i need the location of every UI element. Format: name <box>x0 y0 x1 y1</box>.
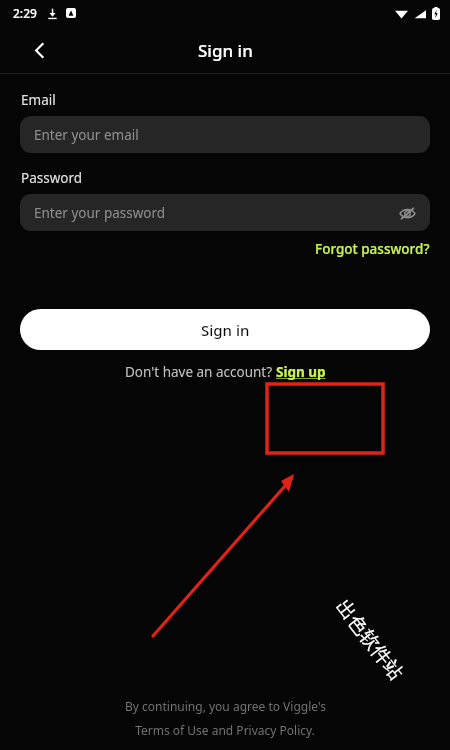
staticText: Enter your email <box>34 126 139 144</box>
staticText: Password <box>21 169 83 187</box>
staticText: Sign in <box>198 39 253 62</box>
staticText: Email <box>21 91 56 109</box>
button[interactable]: Enter your password <box>20 194 430 231</box>
button[interactable]: Forgot password? <box>295 237 450 261</box>
staticText: Enter your password <box>34 204 166 222</box>
staticText: Sign in <box>201 320 250 340</box>
staticText: Don't have an account? <box>125 363 276 381</box>
staticText: 2:29 <box>13 5 37 21</box>
button[interactable]: Sign up <box>276 363 326 381</box>
staticText: Terms of Use and Privacy Policy. <box>135 722 315 738</box>
button[interactable]: Enter your email <box>20 116 430 153</box>
staticText: By continuing, you agree to Viggle's <box>125 698 326 714</box>
button[interactable]: Show password <box>394 200 420 226</box>
staticText: Forgot password? <box>315 240 430 258</box>
button[interactable]: Back <box>22 33 56 67</box>
staticText: 出色软件站 <box>331 595 408 685</box>
button[interactable]: Sign in <box>20 309 430 350</box>
staticText: Sign up <box>276 363 326 381</box>
